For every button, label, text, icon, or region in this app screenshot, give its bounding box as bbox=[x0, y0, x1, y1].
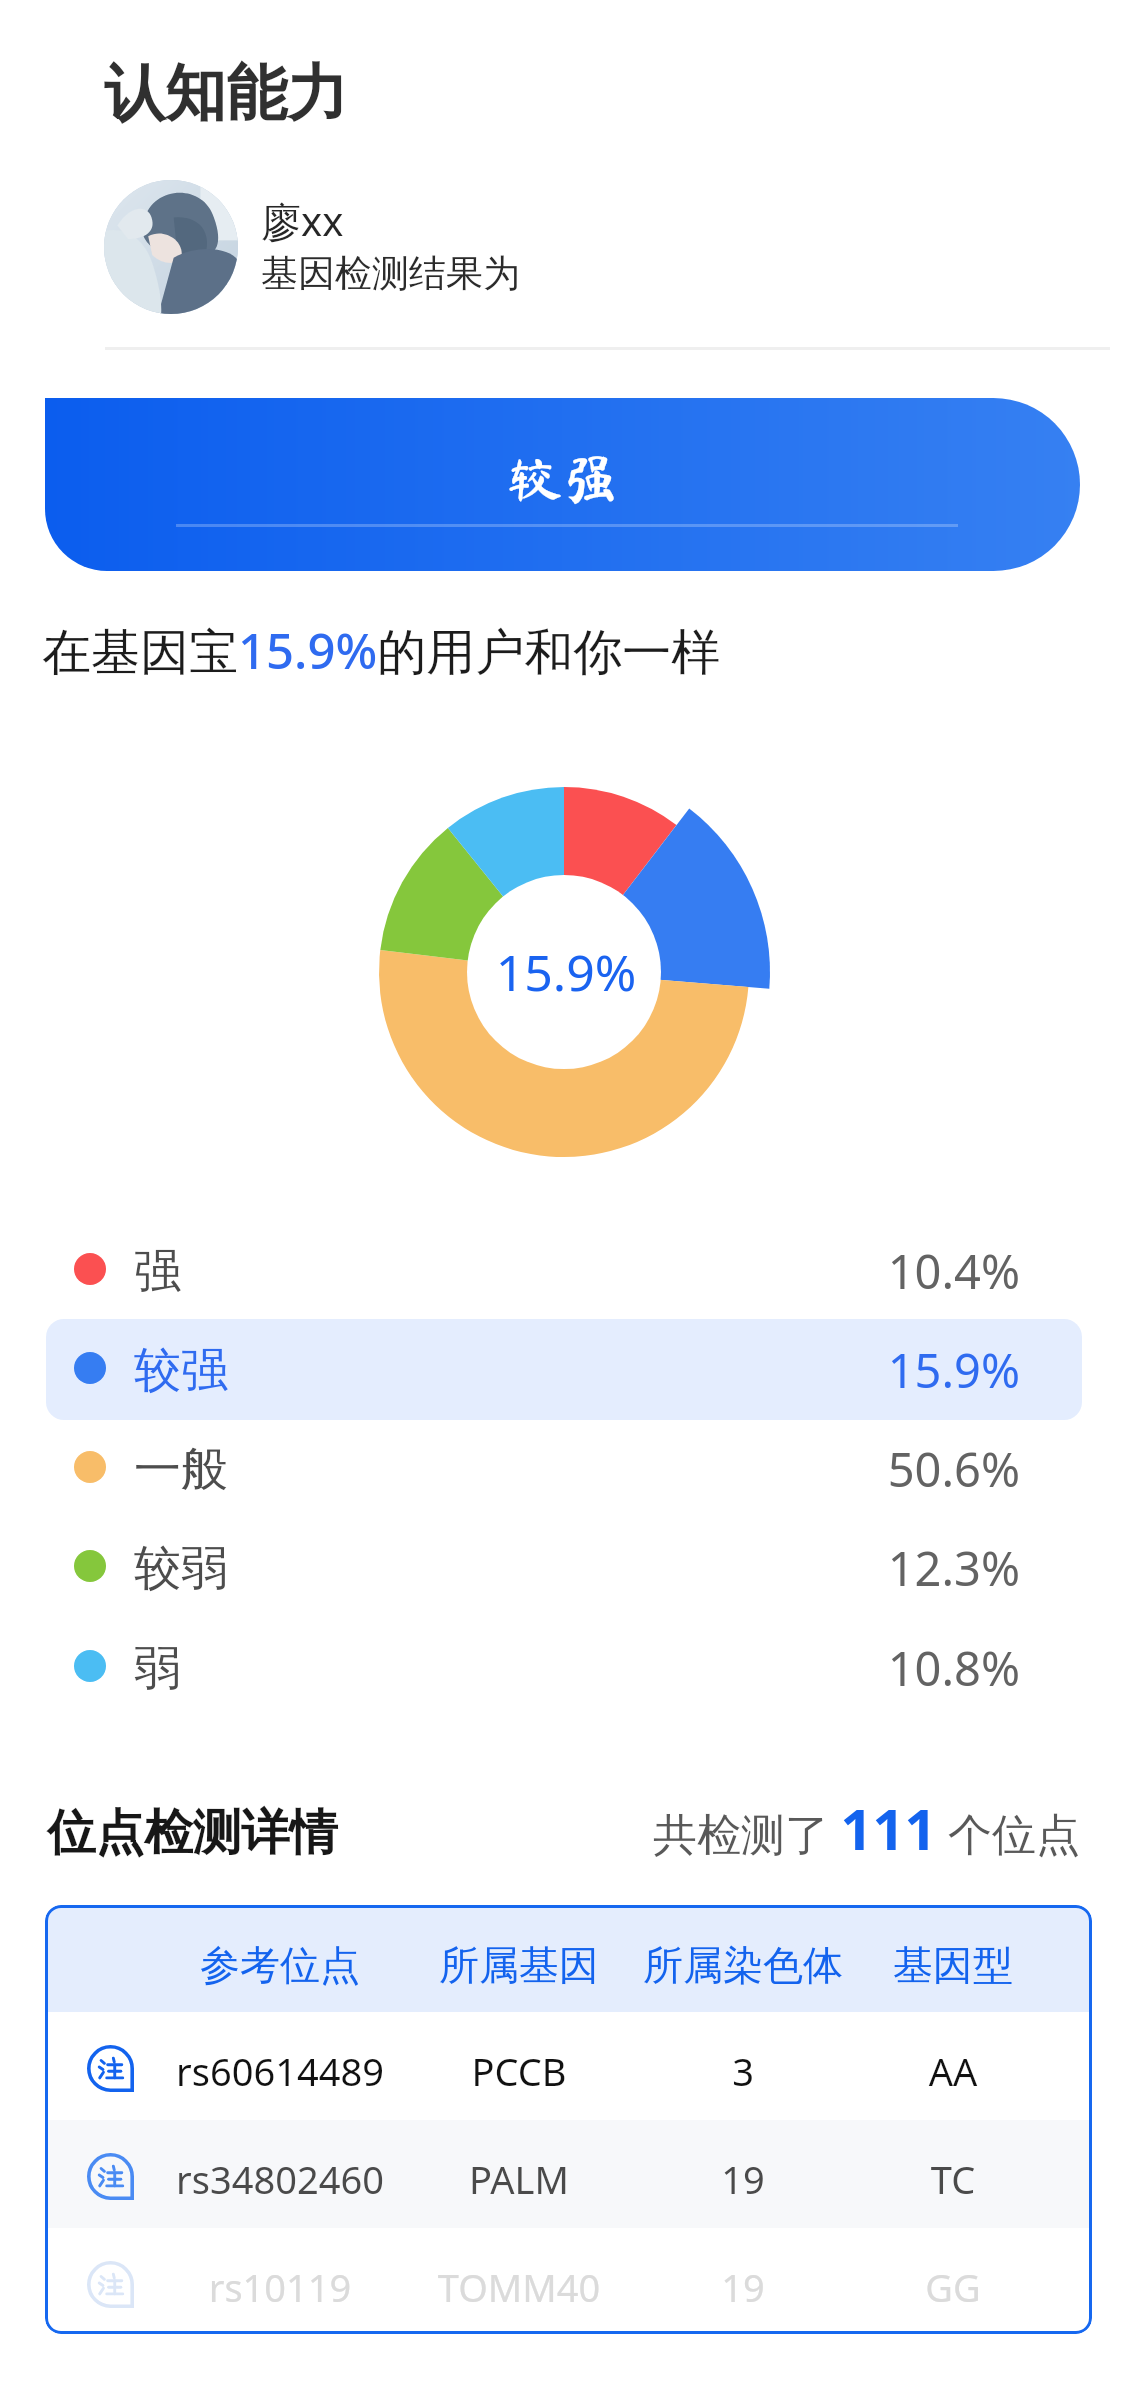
staticText: TC bbox=[803, 2153, 1092, 2205]
staticText: 12.3% bbox=[820, 1536, 1020, 1600]
staticText: 参考位点 bbox=[130, 1940, 430, 1990]
staticText: 10.4% bbox=[820, 1239, 1020, 1303]
staticText: PCCB bbox=[369, 2045, 669, 2097]
staticText: GG bbox=[803, 2261, 1092, 2313]
staticText: TOMM40 bbox=[369, 2261, 669, 2313]
button[interactable] bbox=[45, 2228, 1092, 2334]
staticText: rs60614489 bbox=[130, 2045, 430, 2097]
staticText: 较强 bbox=[134, 1341, 228, 1400]
staticText: 基因检测结果为 bbox=[261, 250, 520, 297]
staticText: 一般 bbox=[134, 1440, 228, 1499]
button[interactable] bbox=[46, 1220, 1082, 1321]
staticText: 19 bbox=[593, 2153, 893, 2205]
button[interactable] bbox=[46, 1418, 1082, 1519]
button[interactable] bbox=[46, 1517, 1082, 1618]
staticText: 50.6% bbox=[820, 1437, 1020, 1501]
button[interactable]: Note bbox=[87, 2153, 134, 2200]
button[interactable] bbox=[45, 2120, 1092, 2228]
button[interactable]: Note bbox=[87, 2045, 134, 2092]
button[interactable] bbox=[46, 1617, 1082, 1718]
button[interactable]: 较强 bbox=[45, 398, 1080, 571]
button[interactable] bbox=[45, 2012, 1092, 2120]
staticText: 所属染色体 bbox=[593, 1940, 893, 1990]
staticText: 在基因宝15.9%的用户和你一样 bbox=[42, 617, 721, 684]
staticText: 共检测了 111 个位点 bbox=[653, 1790, 1080, 1866]
staticText: 15.9% bbox=[820, 1338, 1020, 1402]
button[interactable]: Note bbox=[87, 2261, 134, 2308]
staticText: 所属基因 bbox=[369, 1940, 669, 1990]
staticText: 弱 bbox=[134, 1639, 181, 1698]
staticText: 强 bbox=[134, 1242, 181, 1301]
staticText: 19 bbox=[593, 2261, 893, 2313]
button[interactable] bbox=[46, 1319, 1082, 1420]
staticText: PALM bbox=[369, 2153, 669, 2205]
staticText: 3 bbox=[593, 2045, 893, 2097]
staticText: rs10119 bbox=[130, 2261, 430, 2313]
staticText: 基因型 bbox=[803, 1940, 1092, 1990]
staticText: 较强 bbox=[443, 451, 683, 507]
staticText: 15.9% bbox=[446, 938, 686, 1006]
staticText: 位点检测详情 bbox=[47, 1802, 338, 1863]
button[interactable] bbox=[46, 1319, 1082, 1420]
staticText: 10.8% bbox=[820, 1636, 1020, 1700]
staticText: 认知能力 bbox=[104, 55, 348, 132]
staticText: AA bbox=[803, 2045, 1092, 2097]
staticText: rs34802460 bbox=[130, 2153, 430, 2205]
staticText: 较弱 bbox=[134, 1539, 228, 1598]
staticText: 廖xx bbox=[261, 193, 344, 248]
